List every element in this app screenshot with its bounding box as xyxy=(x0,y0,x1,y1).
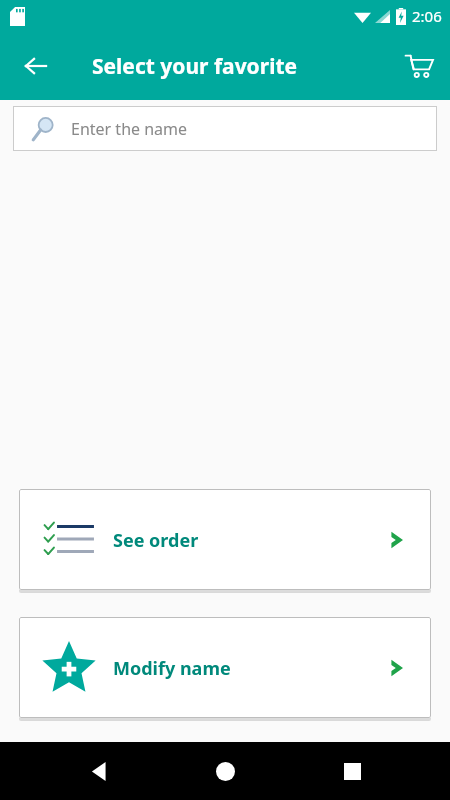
staticText: Modify name xyxy=(113,656,231,681)
button[interactable]: Recent apps xyxy=(324,743,380,799)
button[interactable]: Cart xyxy=(397,44,441,88)
button[interactable]: Modify name xyxy=(19,617,431,718)
staticText: See order xyxy=(113,528,199,553)
staticText: Select your favorite xyxy=(92,52,298,81)
staticText: Enter the name xyxy=(71,118,188,140)
button[interactable]: Enter the name xyxy=(13,106,437,151)
button[interactable]: See order xyxy=(19,489,431,590)
staticText: 2:06 xyxy=(412,6,442,26)
button[interactable]: Home xyxy=(197,743,253,799)
button[interactable]: Back xyxy=(12,42,60,90)
button[interactable]: Back xyxy=(71,743,127,799)
